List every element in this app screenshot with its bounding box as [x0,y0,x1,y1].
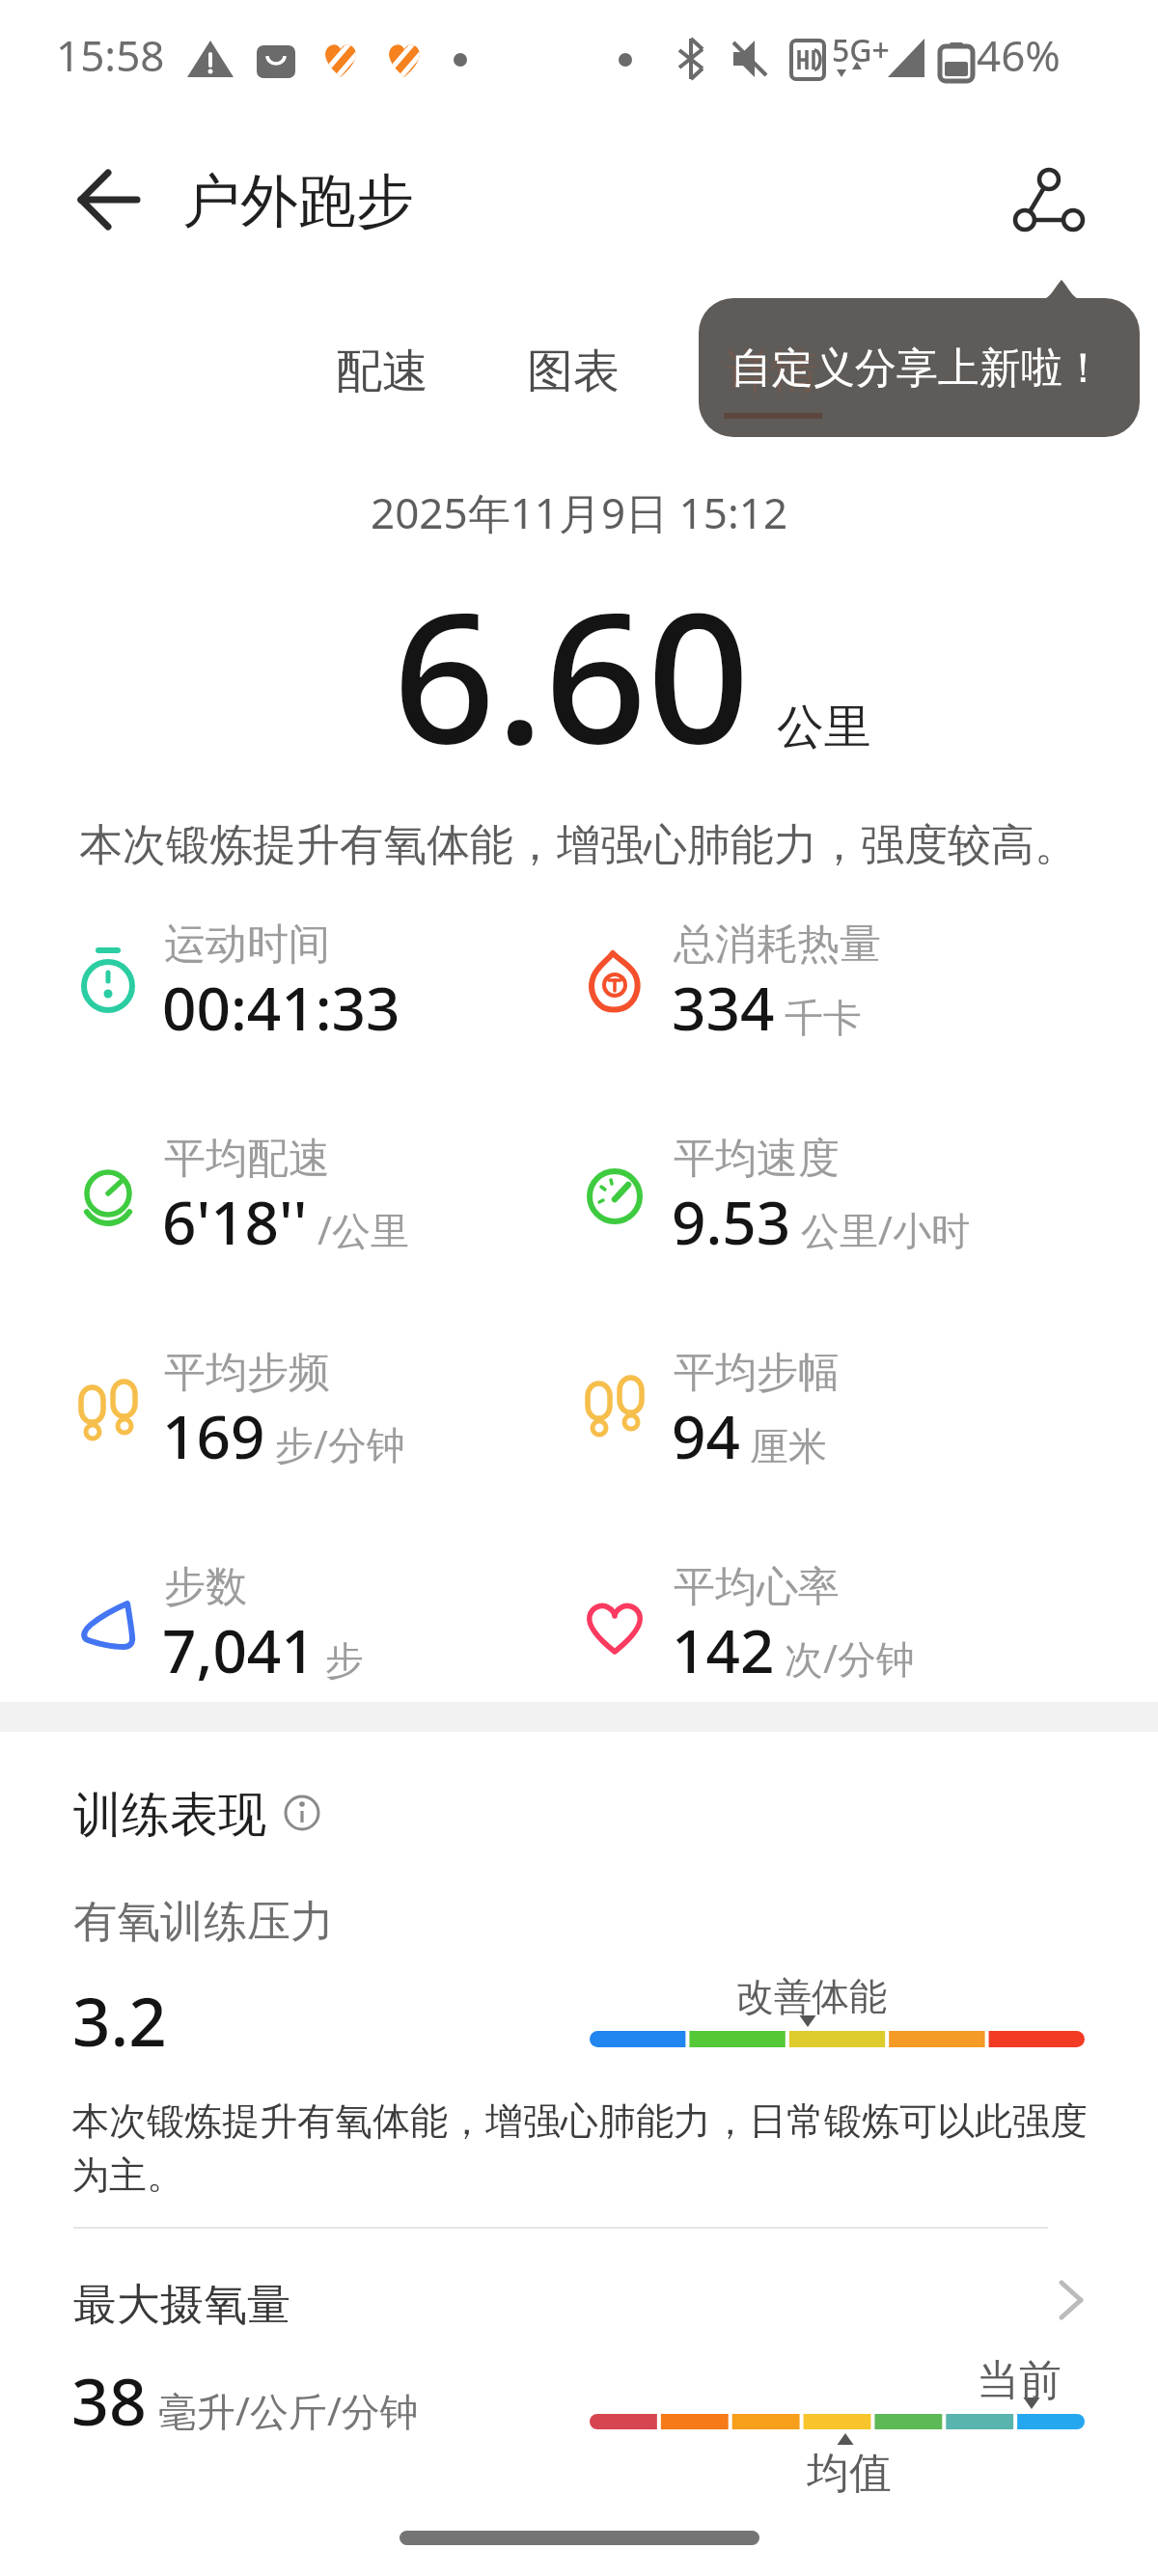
staticText: 毫升/公斤/分钟 [158,2384,419,2437]
staticText: 改善体能 [736,1973,887,2020]
staticText: 训练表现 [73,1785,266,1846]
staticText: 厘米 [750,1422,827,1470]
staticText: 9.53 [672,1181,791,1262]
staticText: 步数 [164,1561,247,1613]
button[interactable] [994,154,1090,246]
staticText: 平均速度 [674,1133,840,1185]
staticText: 15:58 [56,26,165,84]
staticText: 平均配速 [164,1133,330,1185]
staticText: 38 [71,2355,147,2445]
staticText: 6'18'' [162,1181,308,1262]
staticText: 94 [672,1395,740,1476]
staticText: 142 [672,1609,775,1690]
button[interactable]: 图表 [527,343,620,400]
button[interactable]: 配速 [336,343,428,400]
staticText: 最大摄氧量 [73,2278,290,2333]
staticText: 户外跑步 [182,165,414,238]
button[interactable] [68,164,145,235]
staticText: 公里/小时 [801,1203,970,1256]
staticText: 7,041 [162,1609,316,1690]
button[interactable] [0,2258,1158,2335]
button[interactable] [280,1791,324,1835]
staticText: 运动时间 [164,918,330,971]
staticText: 本次锻炼提升有氧体能，增强心肺能力，强度较高。 [79,818,1078,873]
staticText: 次/分钟 [785,1631,915,1685]
staticText: 详情 [726,343,818,400]
staticText: 5G+ [832,29,890,71]
staticText: 169 [162,1395,265,1476]
staticText: 平均心率 [674,1561,840,1613]
staticText: 步/分钟 [275,1417,405,1470]
staticText: 为主。 [71,2151,184,2199]
staticText: 公里 [777,698,871,757]
staticText: 00:41:33 [162,967,400,1048]
staticText: 平均步幅 [674,1347,840,1399]
staticText: 自定义分享上新啦！ [731,343,1104,395]
staticText: 本次锻炼提升有氧体能，增强心肺能力，日常锻炼可以此强度 [71,2097,1088,2145]
button[interactable] [699,298,1140,437]
staticText: 2025年11月9日 15:12 [371,483,788,541]
staticText: /公里 [317,1203,409,1256]
staticText: 有氧训练压力 [73,1895,334,1950]
staticText: 步 [325,1636,364,1685]
staticText: 平均步频 [164,1347,330,1399]
staticText: 当前 [977,2354,1061,2407]
staticText: 总消耗热量 [674,918,881,971]
staticText: 6.60 [393,551,750,795]
staticText: 3.2 [72,1975,167,2066]
staticText: 图表 [527,343,620,400]
staticText: 334 [672,967,775,1048]
staticText: 均值 [807,2447,892,2500]
staticText: 配速 [336,343,428,400]
staticText: 千卡 [785,994,862,1042]
staticText: 46% [977,26,1061,84]
